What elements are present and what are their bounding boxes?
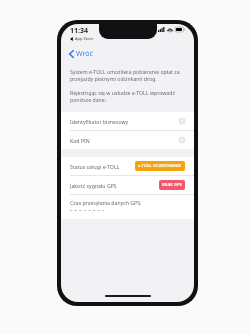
button[interactable]: Kod PIN xyxy=(61,131,194,149)
staticText: Rejestrując się w usłudze e-TOLL wprowad… xyxy=(70,89,185,104)
staticText: Wróć xyxy=(76,49,93,59)
staticText: Czas przesyłania danych GPS: xyxy=(70,199,142,206)
staticText: Jakość sygnału GPS xyxy=(70,182,117,189)
button[interactable]: Identyfikator biznesowy xyxy=(61,112,194,130)
staticText: System e-TOLL umożliwia pobieranie opłat… xyxy=(70,68,185,83)
other: Kopiuj xyxy=(179,118,185,124)
button[interactable]: Jakość sygnału GPS xyxy=(61,176,194,194)
button[interactable]: Status usługi e-TOLL xyxy=(61,157,194,175)
staticText: Identyfikator biznesowy xyxy=(70,118,129,125)
other: Kopiuj xyxy=(179,137,185,143)
staticText: BRAK GPS xyxy=(162,182,182,188)
button[interactable]: Wróć xyxy=(67,47,95,61)
staticText: Kod PIN xyxy=(70,137,90,144)
button[interactable]: Czas przesyłania danych GPS: xyxy=(61,195,194,219)
staticText: App Store xyxy=(75,36,94,41)
staticText: e-TOLL OCZEKIWANIE xyxy=(138,163,182,169)
staticText: 11:34 xyxy=(70,26,88,36)
staticText: Status usługi e-TOLL xyxy=(70,163,120,170)
